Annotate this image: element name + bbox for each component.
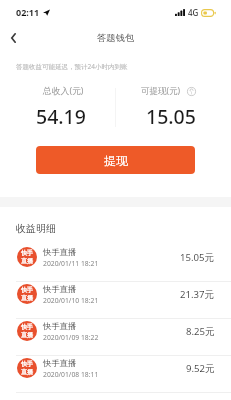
staticText: 总收入(元)	[43, 85, 84, 97]
button[interactable]: 快手	[0, 282, 231, 319]
button[interactable]: 快手	[0, 245, 231, 282]
staticText: 可提现(元)	[141, 85, 181, 97]
button[interactable]: Back	[0, 24, 26, 52]
staticText: 快手直播	[43, 284, 77, 294]
staticText: 直播	[21, 368, 33, 376]
staticText: 4G	[188, 7, 199, 18]
staticText: 15.05元	[180, 251, 215, 264]
staticText: 02:11	[16, 6, 40, 18]
staticText: 9.52元	[186, 362, 215, 375]
staticText: 快手	[21, 286, 33, 294]
staticText: 54.19	[36, 103, 86, 130]
staticText: 快手直播	[43, 247, 77, 257]
staticText: 2020/01/11 18:21	[43, 259, 99, 268]
staticText: 2020/01/08 18:11	[43, 370, 99, 379]
staticText: 21.37元	[180, 288, 215, 301]
staticText: 收益明细	[16, 222, 56, 235]
staticText: 2020/01/10 18:21	[43, 296, 99, 305]
staticText: 快手	[21, 360, 33, 368]
staticText: 答题钱包	[97, 32, 135, 44]
staticText: 提现	[104, 153, 128, 168]
staticText: 快手	[21, 323, 33, 331]
button[interactable]: Help about withdrawable amount	[187, 87, 196, 96]
staticText: 直播	[21, 331, 33, 339]
staticText: 快手直播	[43, 321, 77, 331]
staticText: 15.05	[146, 103, 196, 130]
staticText: 直播	[21, 257, 33, 265]
staticText: 2020/01/09 18:22	[43, 333, 99, 342]
button[interactable]: 快手	[0, 319, 231, 356]
staticText: 直播	[21, 294, 33, 302]
button[interactable]: 快手	[0, 356, 231, 393]
staticText: 快手直播	[43, 358, 77, 368]
staticText: 快手	[21, 249, 33, 257]
staticText: 8.25元	[186, 325, 215, 338]
button[interactable]: 提现	[36, 146, 195, 174]
staticText: 答题收益可能延迟，预计24小时内到账	[16, 62, 128, 71]
